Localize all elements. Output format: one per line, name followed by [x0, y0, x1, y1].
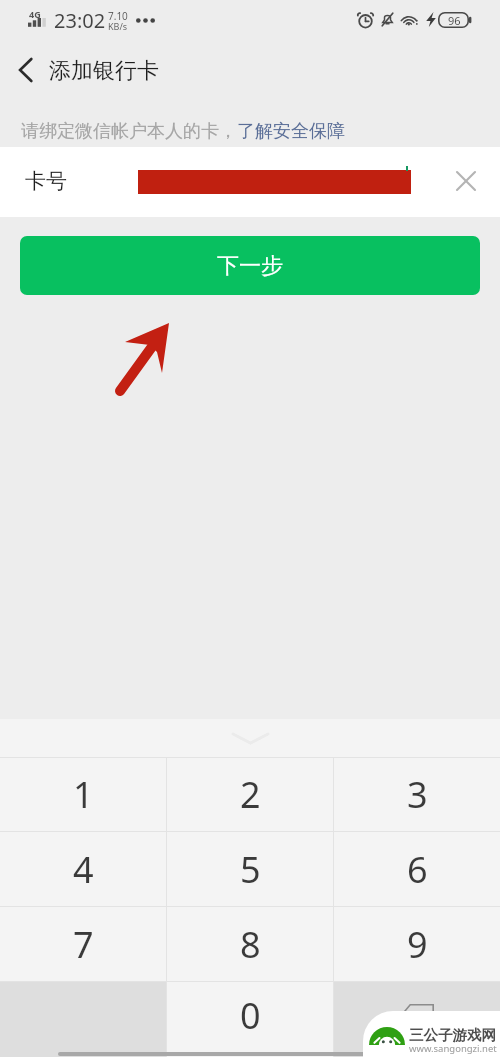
staticText: 2: [240, 770, 261, 819]
staticText: 4: [73, 845, 94, 894]
staticText: 请绑定微信帐户本人的卡，: [21, 120, 237, 143]
button[interactable]: 4: [0, 832, 166, 906]
staticText: 3: [407, 770, 428, 819]
staticText: 三公子游戏网: [409, 1026, 496, 1044]
button[interactable]: Delete: [334, 982, 500, 1049]
button[interactable]: 2: [167, 758, 333, 831]
staticText: 7: [73, 920, 94, 969]
staticText: 5: [240, 845, 261, 894]
staticText: 96: [448, 13, 461, 28]
staticText: 4G: [29, 8, 41, 20]
button[interactable]: Clear text: [448, 163, 484, 199]
button[interactable]: 9: [334, 907, 500, 981]
button[interactable]: 5: [167, 832, 333, 906]
staticText: 23:02: [54, 7, 106, 34]
staticText: 下一步: [217, 252, 283, 280]
button[interactable]: 0: [167, 982, 333, 1049]
button[interactable]: 8: [167, 907, 333, 981]
button[interactable]: 7: [0, 907, 166, 981]
staticText: KB/s: [108, 20, 128, 32]
button[interactable]: 1: [0, 758, 166, 831]
button[interactable]: 下一步: [20, 236, 480, 295]
staticText: 添加银行卡: [49, 57, 159, 85]
staticText: 7.10: [108, 9, 128, 23]
staticText: 0: [240, 991, 261, 1040]
button[interactable]: Back: [0, 40, 50, 100]
button[interactable]: 3: [334, 758, 500, 831]
staticText: 9: [407, 920, 428, 969]
staticText: 6: [407, 845, 428, 894]
staticText: 卡号: [25, 168, 67, 194]
button[interactable]: 了解安全保障: [237, 120, 345, 143]
staticText: 1: [73, 770, 94, 819]
button[interactable]: 6: [334, 832, 500, 906]
staticText: www.sangongzi.net: [409, 1042, 497, 1055]
staticText: 8: [240, 920, 261, 969]
